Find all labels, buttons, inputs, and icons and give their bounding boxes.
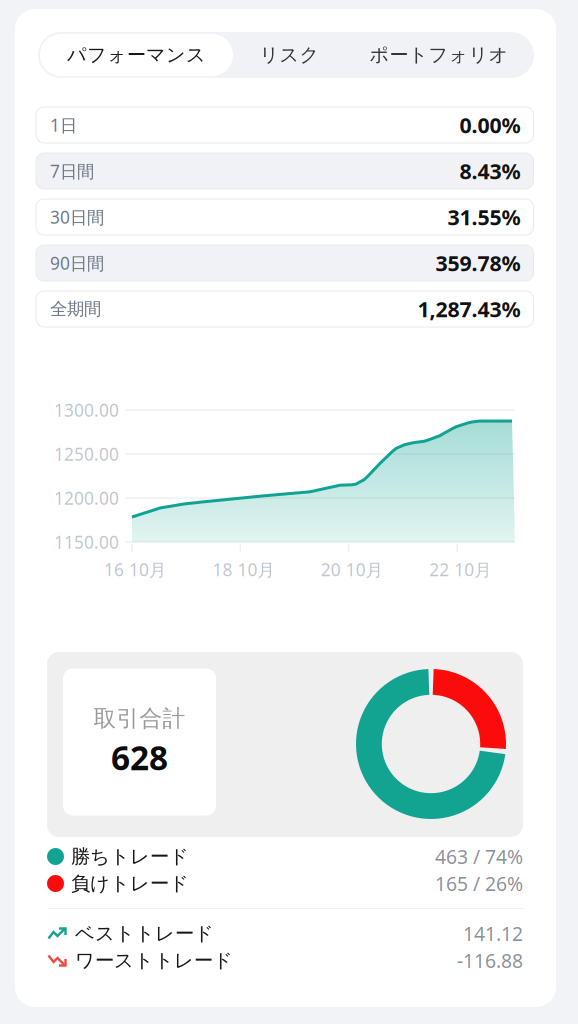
staticText: ワーストトレード <box>75 948 233 973</box>
staticText: 20 10月 <box>321 558 383 581</box>
staticText: 31.55% <box>447 203 520 231</box>
staticText: 7日間 <box>50 159 94 182</box>
staticText: 1200.00 <box>54 486 119 509</box>
staticText: 全期間 <box>50 298 101 320</box>
staticText: リスク <box>259 43 319 67</box>
button[interactable]: ポートフォリオ <box>346 34 532 76</box>
staticText: 取引合計 <box>93 704 185 732</box>
staticText: 18 10月 <box>212 558 274 581</box>
staticText: 463 / 74% <box>435 843 523 870</box>
staticText: 1150.00 <box>54 530 119 553</box>
button[interactable]: パフォーマンス <box>40 34 233 76</box>
staticText: パフォーマンス <box>67 43 206 67</box>
staticText: 勝ちトレード <box>71 844 189 869</box>
staticText: ベストトレード <box>75 921 214 946</box>
staticText: 負けトレード <box>71 871 189 896</box>
staticText: 628 <box>111 735 168 780</box>
staticText: 90日間 <box>50 251 104 274</box>
staticText: 8.43% <box>459 157 520 185</box>
button[interactable]: リスク <box>233 34 346 76</box>
staticText: 22 10月 <box>429 558 491 581</box>
staticText: 1250.00 <box>54 442 119 465</box>
staticText: -116.88 <box>457 947 523 974</box>
staticText: 1日 <box>50 113 77 136</box>
staticText: 359.78% <box>435 249 520 277</box>
staticText: 1,287.43% <box>417 295 520 323</box>
staticText: 165 / 26% <box>435 870 523 897</box>
staticText: 30日間 <box>50 205 104 228</box>
staticText: 141.12 <box>463 920 523 947</box>
staticText: ポートフォリオ <box>369 43 508 67</box>
staticText: 0.00% <box>459 111 520 139</box>
staticText: 1300.00 <box>54 398 119 421</box>
staticText: 16 10月 <box>104 558 166 581</box>
